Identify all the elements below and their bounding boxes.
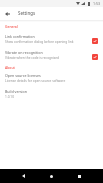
staticText: Build version: [5, 89, 27, 94]
staticText: 1.0.10: [5, 95, 15, 99]
button[interactable]: Toggle setting: [92, 38, 98, 44]
button[interactable]: Recent apps: [65, 169, 93, 183]
staticText: Vibrate on recognition: [5, 50, 43, 55]
button[interactable]: Link confirmation: [0, 31, 103, 47]
staticText: Show confirmation dialog before opening …: [5, 40, 74, 44]
button[interactable]: Back: [9, 169, 37, 183]
staticText: Link confirmation: [5, 34, 35, 39]
button[interactable]: Open source licenses: [0, 70, 103, 86]
staticText: License details for open source software: [5, 79, 66, 83]
button[interactable]: Navigate up: [1, 7, 14, 20]
staticText: About: [5, 65, 15, 70]
staticText: Open source licenses: [5, 73, 41, 78]
staticText: General: [5, 24, 18, 29]
button[interactable]: Toggle setting: [92, 54, 98, 60]
staticText: Settings: [18, 10, 36, 16]
button[interactable]: Build version: [0, 86, 103, 102]
button[interactable]: Vibrate on recognition: [0, 47, 103, 63]
staticText: 1:53: [93, 1, 101, 6]
staticText: Vibrate when the code is recognized: [5, 56, 60, 60]
button[interactable]: Home: [37, 169, 65, 183]
